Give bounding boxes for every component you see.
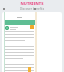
staticText: Discover benefits — [0, 7, 64, 11]
staticText: NUTRIENTS — [0, 1, 64, 6]
